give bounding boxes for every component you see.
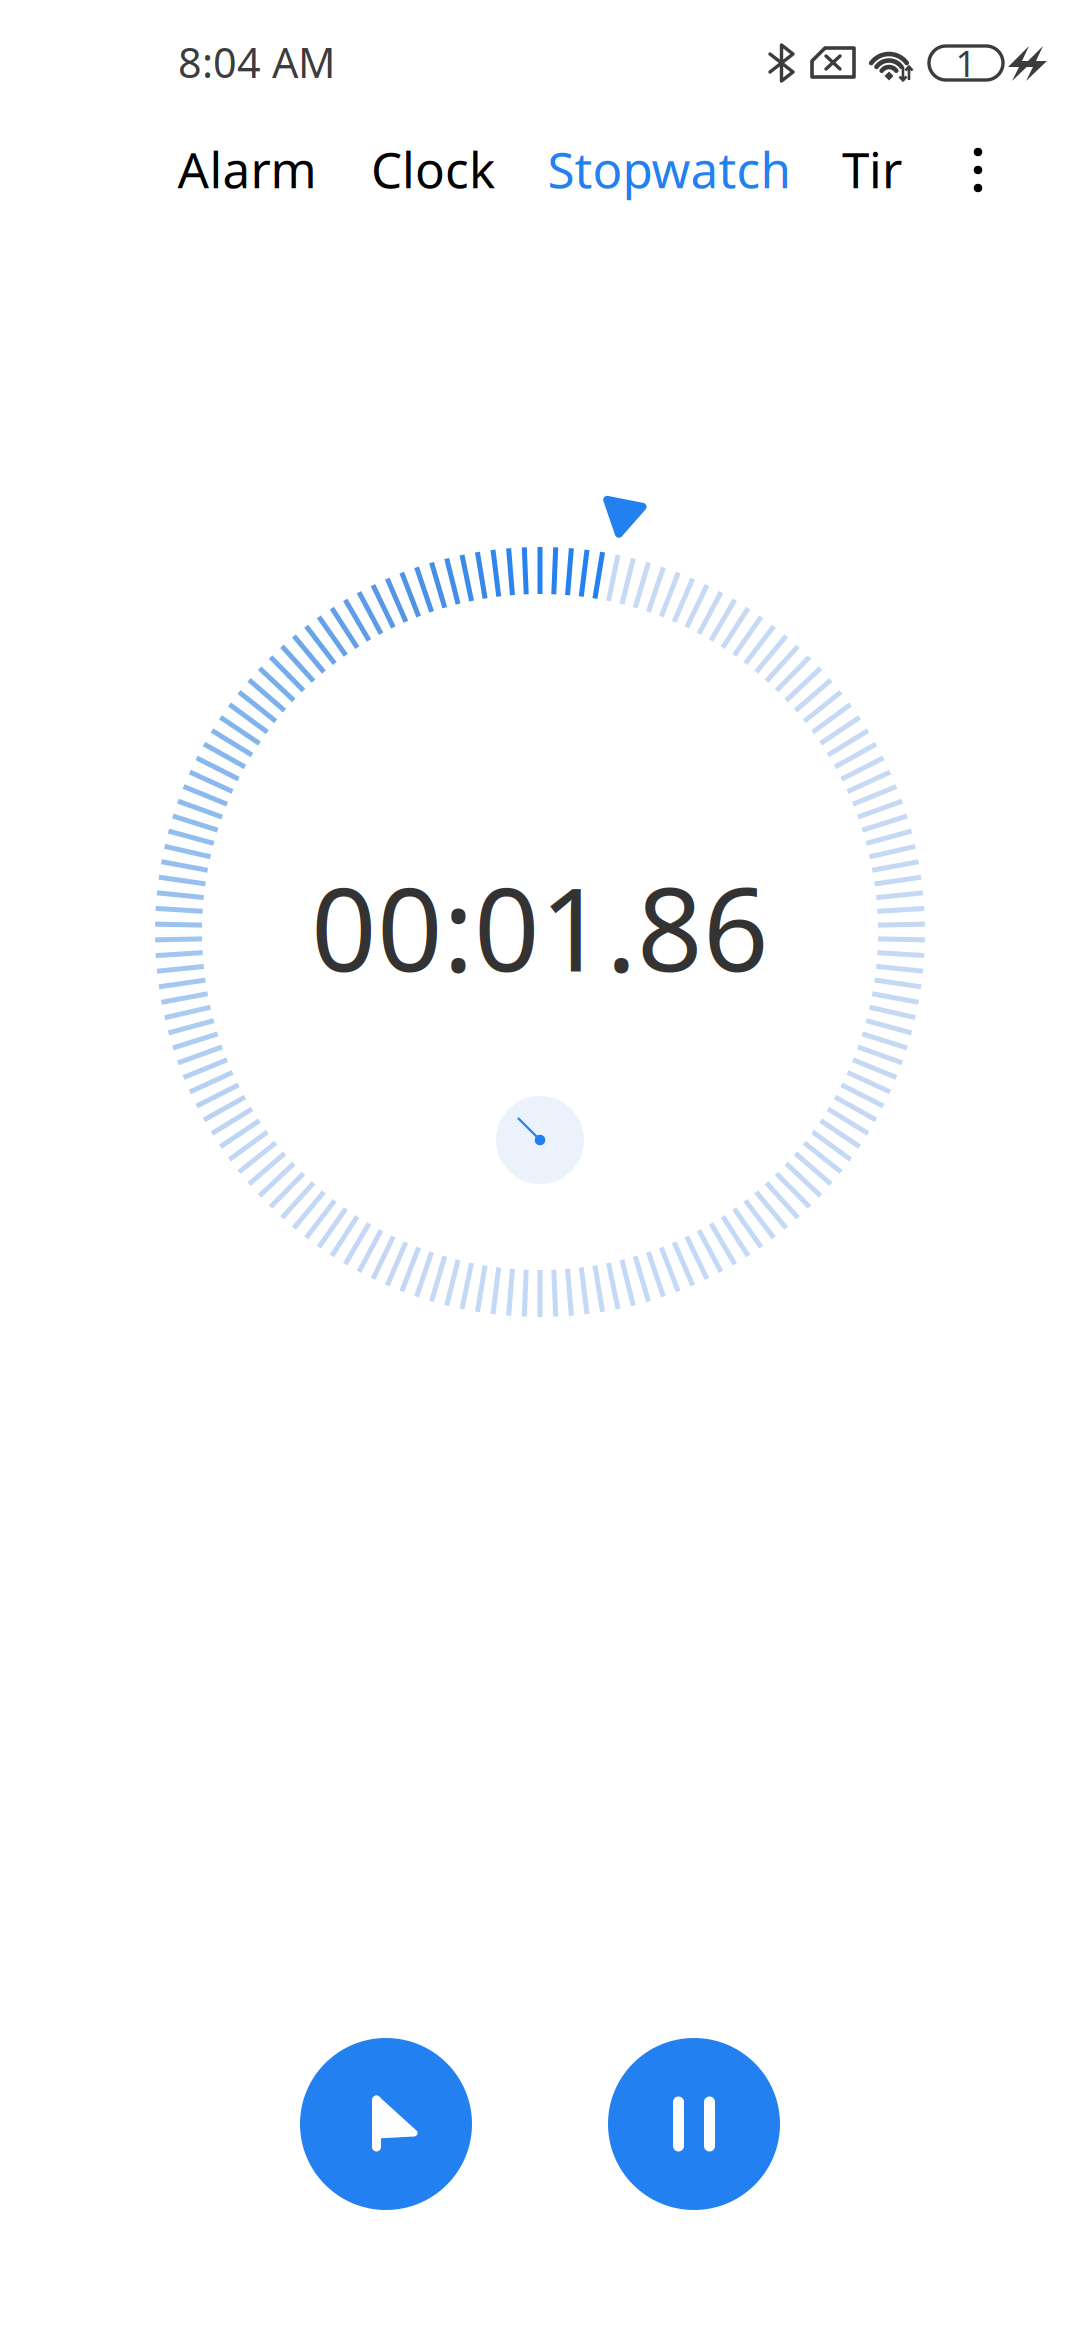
button[interactable]: Alarm xyxy=(163,128,331,210)
staticText: 8:04 AM xyxy=(178,35,335,89)
staticText: Stopwatch xyxy=(547,136,790,202)
button[interactable]: Pause xyxy=(608,2038,780,2210)
button[interactable]: Stopwatch xyxy=(534,128,804,210)
staticText: 1 xyxy=(955,39,976,87)
button[interactable]: Lap xyxy=(300,2038,472,2210)
button[interactable]: Clock xyxy=(352,128,514,210)
staticText: 00:01.86 xyxy=(311,851,769,1003)
staticText: Alarm xyxy=(177,136,316,202)
staticText: Clock xyxy=(371,136,495,202)
staticText: Tir xyxy=(842,136,902,202)
button[interactable]: Tir xyxy=(822,128,922,210)
button[interactable]: More options xyxy=(947,129,1009,211)
